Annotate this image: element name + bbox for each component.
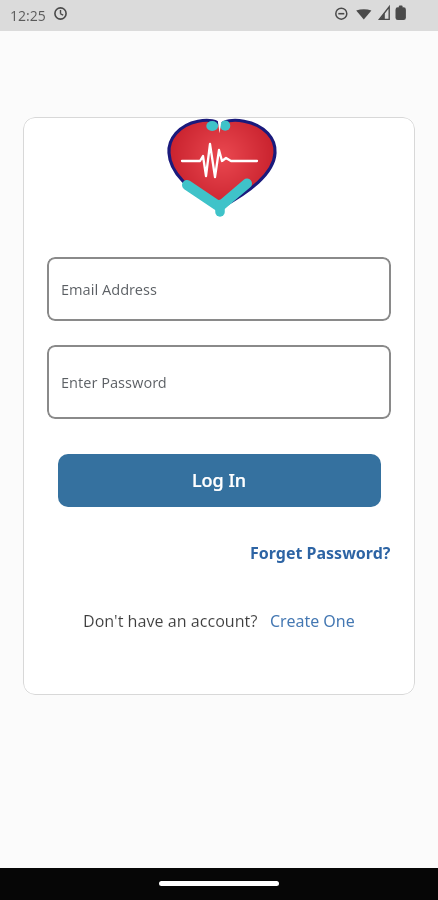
button[interactable]: Log In (58, 454, 381, 507)
button[interactable]: Forget Password? (250, 542, 391, 564)
staticText: Don't have an account? (83, 610, 258, 632)
button[interactable]: Create One (270, 610, 355, 632)
staticText: Email Address (61, 279, 157, 299)
staticText: Log In (192, 468, 247, 493)
button[interactable]: Enter Password (47, 345, 391, 419)
staticText: Enter Password (61, 372, 167, 392)
button[interactable]: Email Address (47, 257, 391, 321)
staticText: 12:25 (10, 6, 46, 25)
